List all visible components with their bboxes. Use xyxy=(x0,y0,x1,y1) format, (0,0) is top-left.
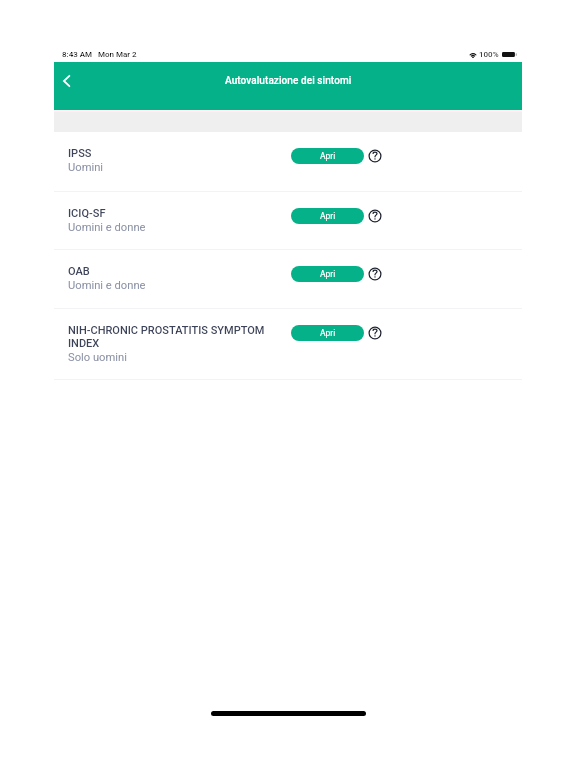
button[interactable]: Apri xyxy=(291,325,364,341)
staticText: Apri xyxy=(320,211,336,221)
staticText: INDEX xyxy=(68,337,100,350)
staticText: Uomini xyxy=(68,161,104,174)
staticText: Mon Mar 2 xyxy=(98,50,137,59)
button[interactable]: Info xyxy=(367,325,383,341)
staticText: Uomini e donne xyxy=(68,279,146,292)
staticText: NIH-CHRONIC PROSTATITIS SYMPTOM xyxy=(68,324,265,337)
staticText: ICIQ-SF xyxy=(68,207,106,220)
button[interactable]: IPSS xyxy=(54,132,522,191)
staticText: Apri xyxy=(320,269,336,279)
staticText: IPSS xyxy=(68,147,92,160)
button[interactable]: Info xyxy=(367,266,383,282)
button[interactable]: Apri xyxy=(291,148,364,164)
staticText: Solo uomini xyxy=(68,351,127,364)
staticText: Apri xyxy=(320,151,336,161)
staticText: Apri xyxy=(320,328,336,338)
button[interactable]: Info xyxy=(367,148,383,164)
staticText: 100% xyxy=(479,50,499,59)
button[interactable]: Info xyxy=(367,208,383,224)
button[interactable]: Back xyxy=(53,68,79,94)
staticText: Uomini e donne xyxy=(68,221,146,234)
staticText: Autovalutazione dei sintomi xyxy=(225,75,352,87)
staticText: 8:43 AM xyxy=(62,50,93,59)
button[interactable]: Apri xyxy=(291,266,364,282)
button[interactable]: OAB xyxy=(54,250,522,308)
button[interactable]: Apri xyxy=(291,208,364,224)
staticText: OAB xyxy=(68,265,90,278)
button[interactable]: NIH-CHRONIC PROSTATITIS SYMPTOM xyxy=(54,309,522,379)
button[interactable]: ICIQ-SF xyxy=(54,192,522,249)
